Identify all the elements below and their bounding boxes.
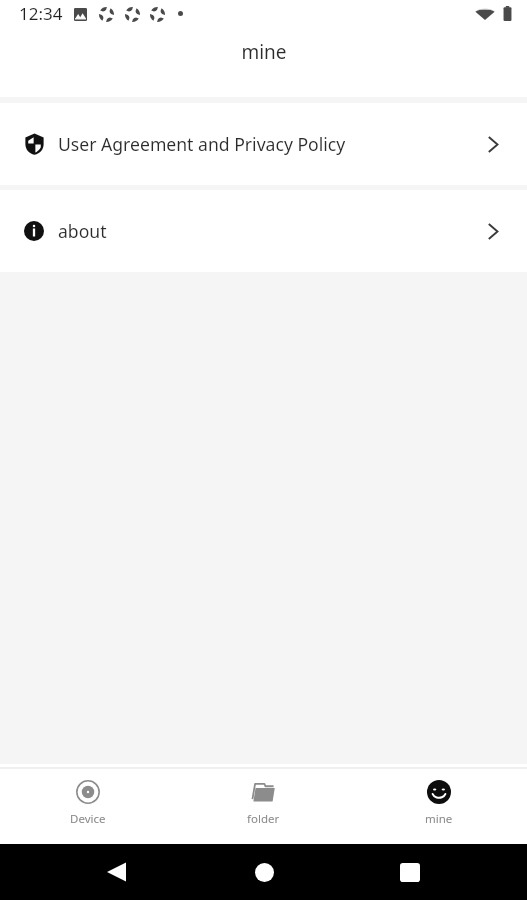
button[interactable]: Back: [88, 844, 144, 900]
staticText: mine: [425, 811, 453, 827]
button[interactable]: Home: [236, 844, 292, 900]
button[interactable]: mine: [351, 769, 527, 838]
staticText: mine: [241, 39, 287, 65]
staticText: 12:34: [19, 2, 63, 25]
staticText: Device: [70, 811, 106, 827]
button[interactable]: folder: [175, 769, 351, 838]
button[interactable]: Device: [0, 769, 175, 838]
staticText: User Agreement and Privacy Policy: [58, 132, 346, 156]
button[interactable]: User Agreement and Privacy Policy: [0, 103, 527, 185]
staticText: folder: [247, 811, 280, 827]
button[interactable]: about: [0, 190, 527, 272]
button[interactable]: Recent apps: [382, 844, 438, 900]
staticText: about: [58, 219, 107, 243]
